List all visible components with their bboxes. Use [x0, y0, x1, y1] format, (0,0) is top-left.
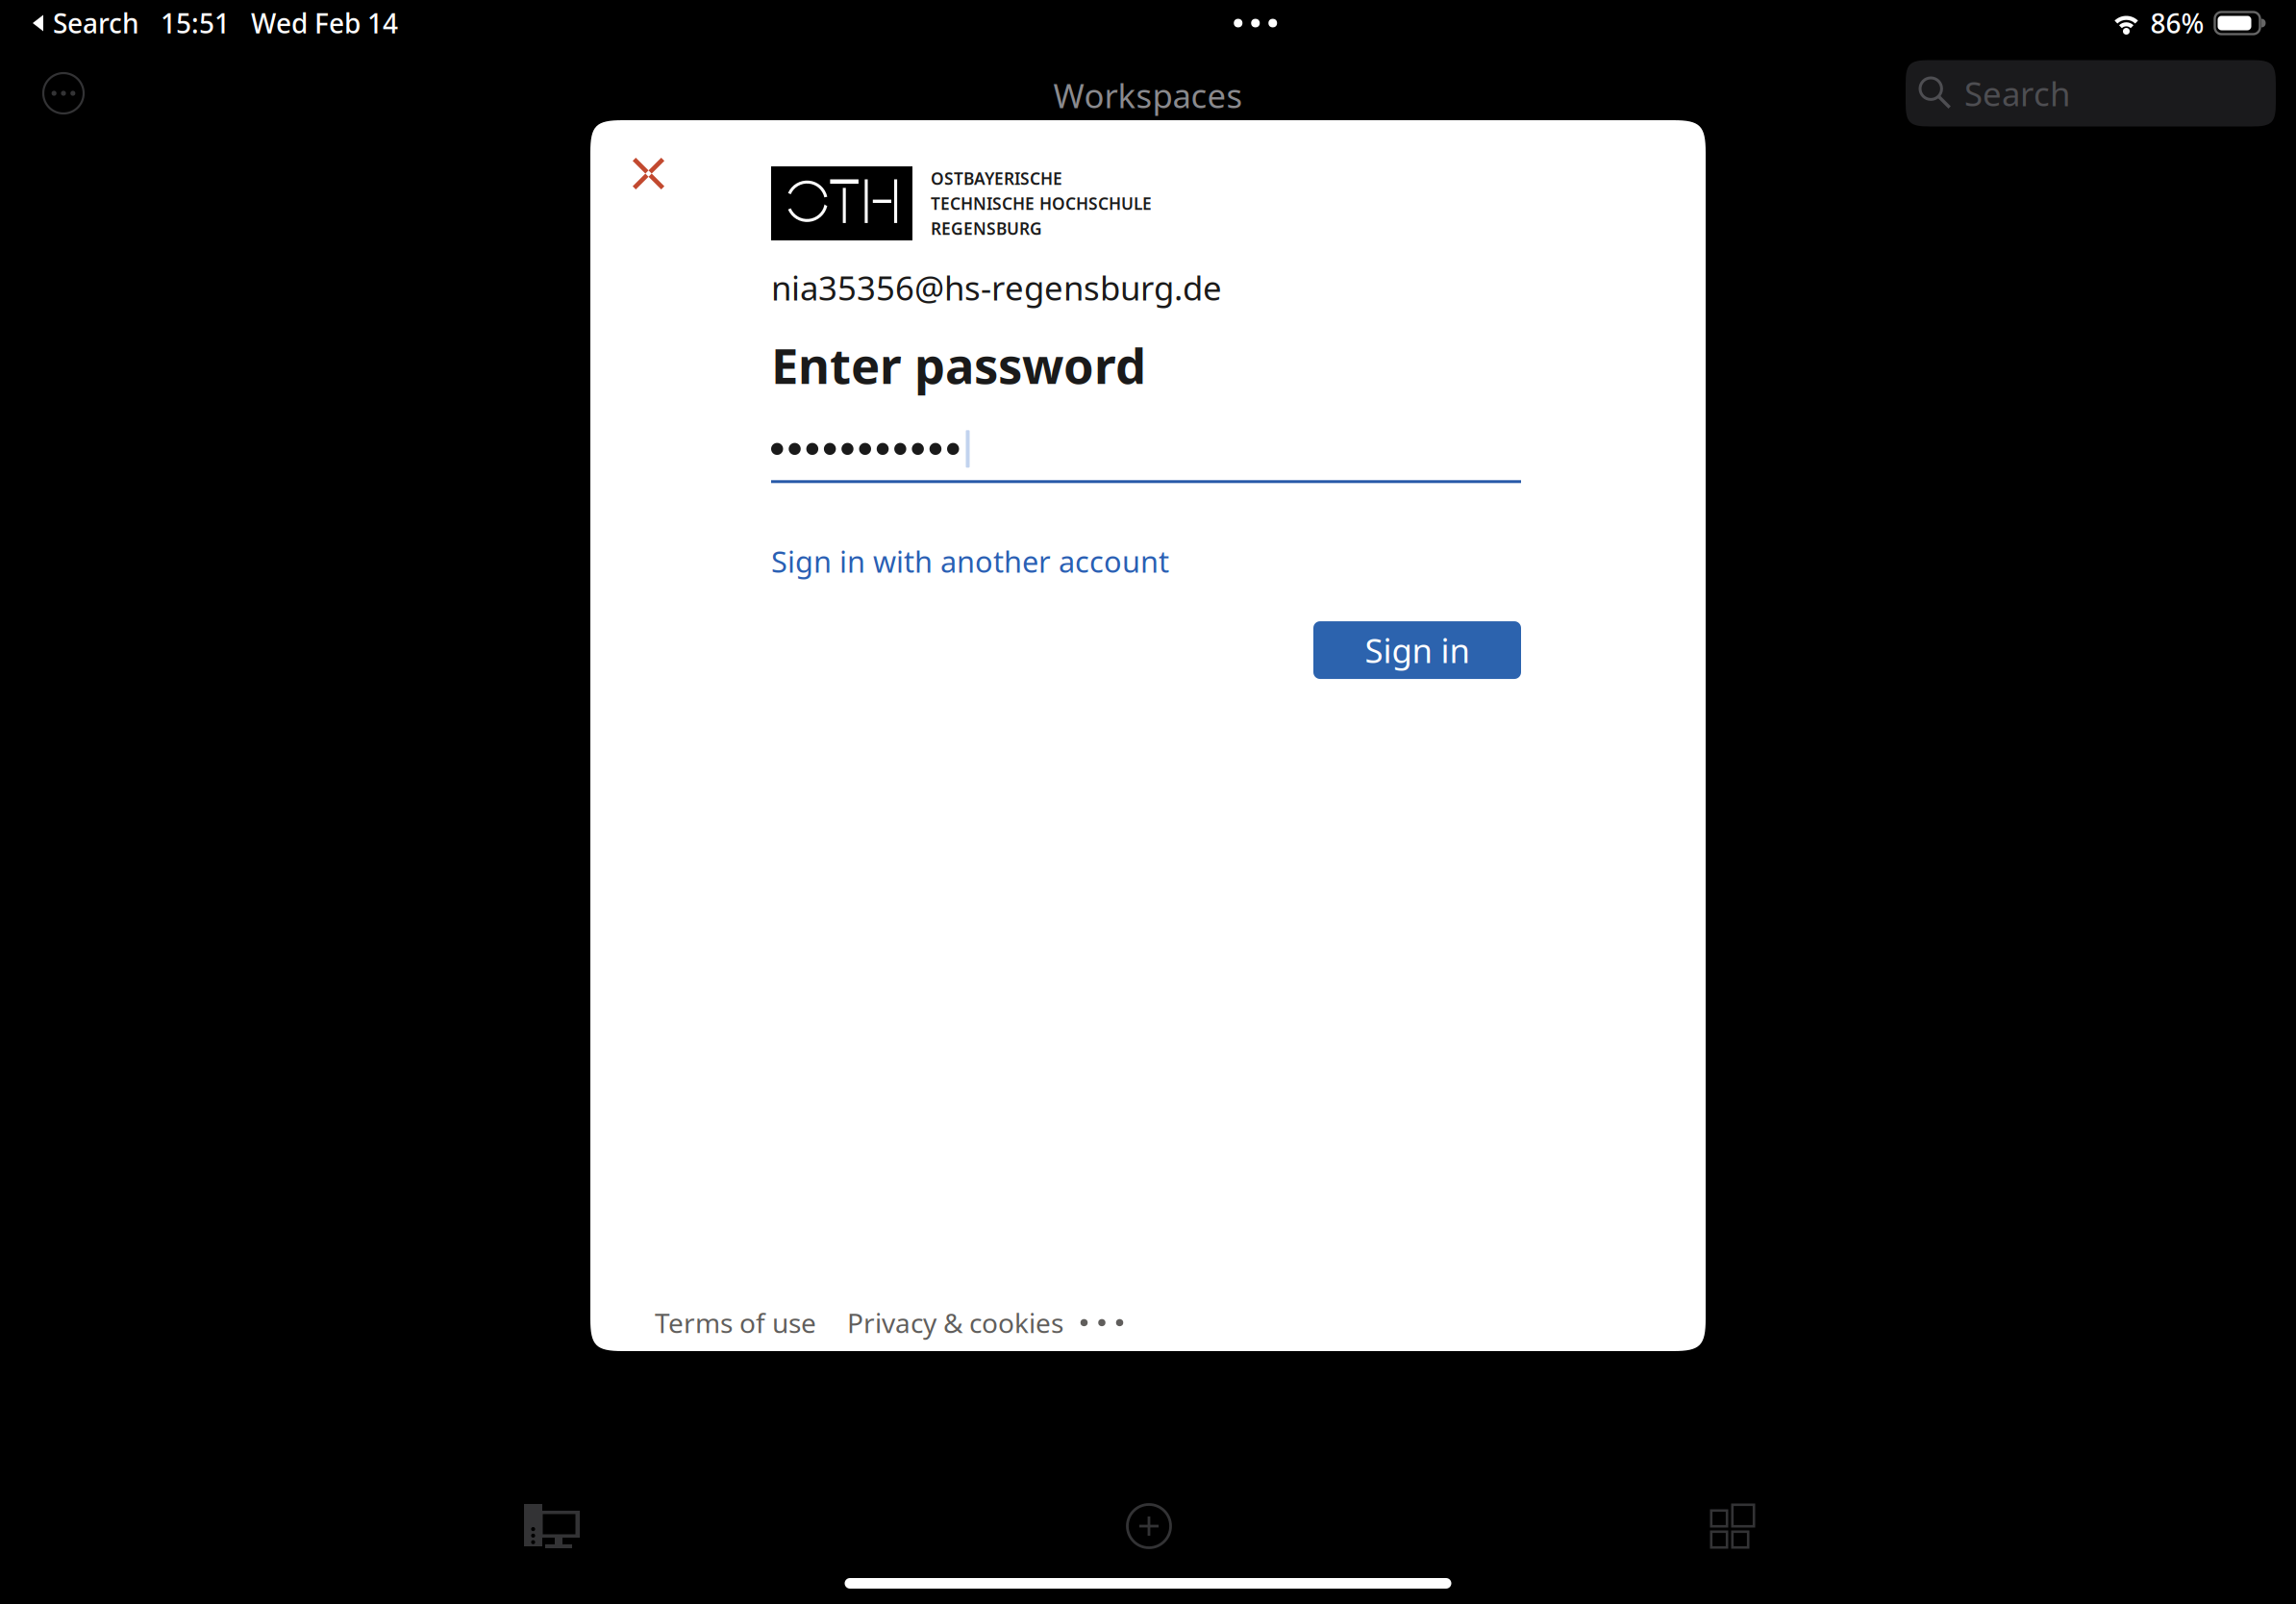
staticText: nia35356@hs-regensburg.de — [771, 265, 1222, 310]
staticText: Search — [1964, 71, 2070, 115]
staticText: OSTBAYERISCHE — [931, 167, 1062, 189]
staticText: REGENSBURG — [931, 217, 1042, 239]
button[interactable]: Computers — [489, 1483, 614, 1569]
staticText: 86% — [2150, 5, 2204, 41]
staticText: Workspaces — [1053, 73, 1243, 117]
button[interactable]: Search — [1906, 60, 2276, 126]
button[interactable]: Privacy & cookies — [847, 1305, 1063, 1341]
staticText: Search — [53, 5, 139, 41]
staticText: Terms of use — [655, 1305, 816, 1341]
button[interactable]: Sign in — [1313, 621, 1521, 679]
staticText: 15:51 — [161, 5, 230, 41]
staticText: Wed Feb 14 — [251, 5, 398, 41]
staticText: Sign in with another account — [771, 542, 1169, 581]
button[interactable]: More options — [30, 60, 97, 127]
button[interactable]: Add workspace — [1086, 1483, 1211, 1569]
staticText: Enter password — [771, 333, 1146, 397]
staticText: Privacy & cookies — [847, 1305, 1063, 1341]
button[interactable]: Sign in with another account — [771, 542, 1169, 581]
button[interactable]: Terms of use — [655, 1305, 816, 1341]
button[interactable]: More — [1073, 1306, 1131, 1339]
staticText: TECHNISCHE HOCHSCHULE — [931, 192, 1152, 214]
button[interactable]: Close — [613, 138, 684, 209]
button[interactable]: Search — [33, 5, 139, 41]
staticText: Sign in — [1365, 628, 1470, 672]
button[interactable]: Workspaces — [1670, 1483, 1795, 1569]
